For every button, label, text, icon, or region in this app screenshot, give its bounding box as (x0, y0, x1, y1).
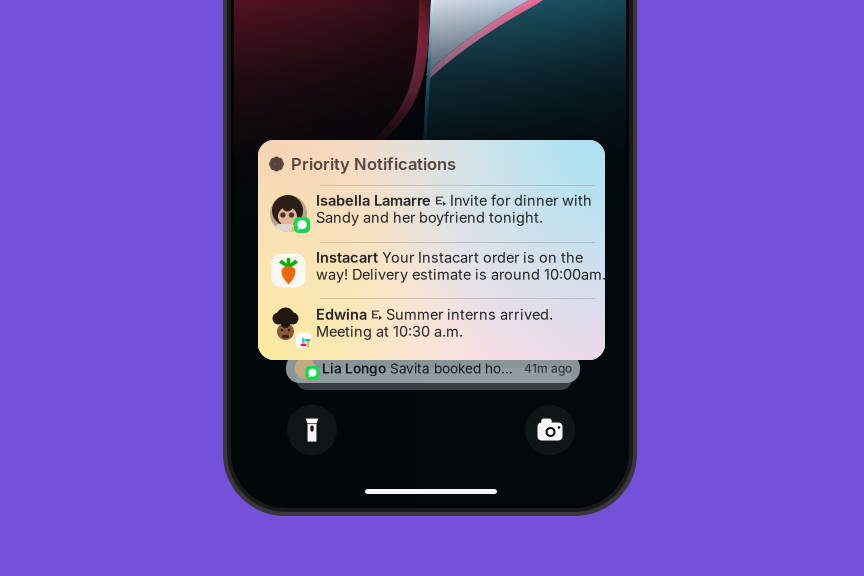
button[interactable]: Lia Longo Savita booked house... (286, 354, 580, 383)
staticText: Summer interns arrived. (386, 306, 553, 323)
staticText: Lia Longo Savita booked house... (322, 360, 516, 376)
staticText: Priority Notifications (291, 154, 456, 174)
button[interactable]: Priority Notifications (258, 140, 605, 360)
staticText: Your Instacart order is on the (382, 249, 583, 266)
staticText: Isabella Lamarre (316, 192, 431, 209)
button[interactable]: Flashlight (287, 405, 337, 455)
staticText: Meeting at 10:30 a.m. (316, 323, 463, 340)
staticText: way! Delivery estimate is around 10:00am… (316, 266, 606, 283)
staticText: Sandy and her boyfriend tonight. (316, 209, 543, 226)
button[interactable]: Camera (525, 405, 575, 455)
staticText: Edwina (316, 306, 367, 323)
staticText: 41m ago (524, 361, 572, 376)
staticText: Invite for dinner with (450, 192, 592, 209)
staticText: Instacart (316, 249, 378, 266)
